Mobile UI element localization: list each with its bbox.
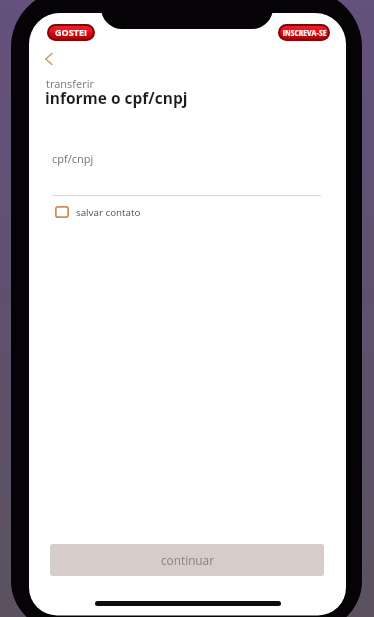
staticText: transferir [46,76,94,91]
staticText: informe o cpf/cnpj [45,87,188,108]
staticText: INSCREVA-SE [282,26,327,38]
button[interactable]: salvar contato [55,199,141,225]
staticText: GOSTEI [55,26,87,38]
button[interactable]: INSCREVA-SE [280,26,328,39]
button[interactable]: continuar [50,544,324,576]
staticText: continuar [161,552,214,568]
staticText: salvar contato [76,206,141,219]
staticText: cpf/cnpj [52,151,94,166]
button[interactable]: GOSTEI [49,26,93,39]
button[interactable]: Voltar [33,43,65,75]
